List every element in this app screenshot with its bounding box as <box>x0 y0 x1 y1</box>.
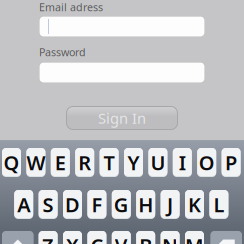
button[interactable]: W <box>26 148 45 177</box>
staticText: R <box>78 149 91 176</box>
staticText: Email adress <box>39 0 103 14</box>
staticText: N <box>162 232 178 244</box>
button[interactable]: E <box>51 148 70 177</box>
staticText: D <box>65 191 80 218</box>
staticText: K <box>188 191 201 218</box>
staticText: U <box>150 149 165 176</box>
button[interactable]: X <box>63 231 82 244</box>
staticText: C <box>90 232 103 244</box>
button[interactable]: F <box>87 190 106 219</box>
button[interactable]: V <box>112 231 131 244</box>
button[interactable]: L <box>209 190 228 219</box>
staticText: W <box>26 149 45 176</box>
button[interactable]: Sign In <box>66 106 178 130</box>
button[interactable]: Q <box>2 148 21 177</box>
button[interactable]: Y <box>124 148 143 177</box>
staticText: T <box>104 149 115 176</box>
staticText: O <box>199 149 215 176</box>
staticText: X <box>66 232 79 244</box>
button[interactable]: R <box>75 148 94 177</box>
button[interactable]: G <box>112 190 131 219</box>
button[interactable]: M <box>185 231 204 244</box>
staticText: B <box>139 232 152 244</box>
staticText: V <box>115 232 128 244</box>
button[interactable]: T <box>100 148 119 177</box>
staticText: Z <box>42 232 54 244</box>
button[interactable]: Z <box>39 231 58 244</box>
staticText: G <box>114 191 129 218</box>
staticText: Q <box>3 149 19 176</box>
button[interactable]: O <box>197 148 216 177</box>
staticText: Y <box>127 149 139 176</box>
staticText: A <box>17 191 30 218</box>
button[interactable]: S <box>39 190 58 219</box>
staticText: L <box>213 191 224 218</box>
staticText: F <box>91 191 102 218</box>
button[interactable]: D <box>63 190 82 219</box>
staticText: S <box>43 191 54 218</box>
button[interactable]: Delete <box>210 231 242 244</box>
button[interactable]: N <box>161 231 180 244</box>
button[interactable]: Shift <box>2 231 33 244</box>
staticText: H <box>138 191 153 218</box>
staticText: E <box>55 149 66 176</box>
button[interactable]: C <box>87 231 106 244</box>
staticText: I <box>179 149 186 176</box>
staticText: P <box>225 149 237 176</box>
button[interactable]: H <box>136 190 155 219</box>
staticText: M <box>185 232 204 244</box>
button[interactable]: I <box>173 148 192 177</box>
button[interactable]: K <box>185 190 204 219</box>
button[interactable]: U <box>148 148 167 177</box>
button[interactable]: B <box>136 231 155 244</box>
staticText: Sign In <box>98 108 146 128</box>
button[interactable]: P <box>222 148 241 177</box>
staticText: Password <box>39 45 86 59</box>
staticText: J <box>167 191 173 218</box>
button[interactable]: J <box>161 190 180 219</box>
button[interactable]: A <box>14 190 33 219</box>
